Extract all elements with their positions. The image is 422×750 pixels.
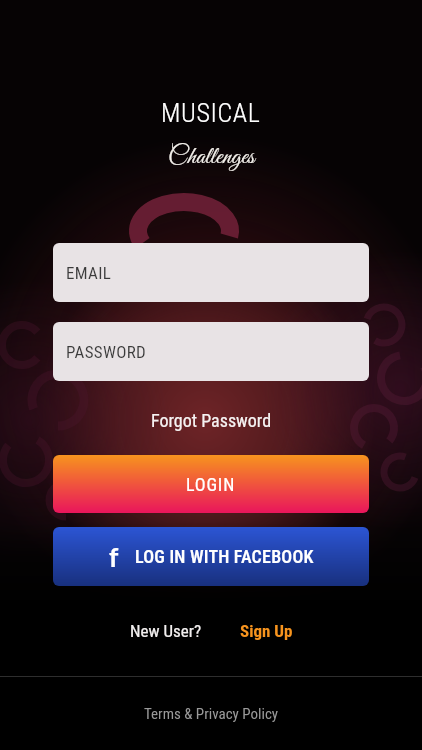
button[interactable]: Forgot Password bbox=[151, 405, 272, 435]
button[interactable]: PASSWORD bbox=[53, 322, 369, 381]
button[interactable]: LOGIN bbox=[53, 455, 369, 513]
staticText: LOGIN bbox=[186, 474, 236, 495]
button[interactable]: f bbox=[53, 527, 369, 586]
staticText: Challenges bbox=[168, 142, 255, 173]
staticText: Sign Up bbox=[240, 621, 293, 641]
button[interactable]: Terms & Privacy Policy bbox=[0, 677, 422, 750]
staticText: MUSICAL bbox=[161, 98, 261, 128]
staticText: Terms & Privacy Policy bbox=[144, 705, 279, 723]
staticText: LOG IN WITH FACEBOOK bbox=[135, 546, 314, 567]
button[interactable]: EMAIL bbox=[53, 243, 369, 302]
staticText: EMAIL bbox=[66, 263, 112, 283]
staticText: f bbox=[109, 541, 119, 572]
button[interactable]: Sign Up bbox=[240, 621, 293, 641]
staticText: New User? bbox=[130, 621, 202, 641]
staticText: PASSWORD bbox=[66, 342, 147, 362]
staticText: Forgot Password bbox=[151, 410, 272, 431]
